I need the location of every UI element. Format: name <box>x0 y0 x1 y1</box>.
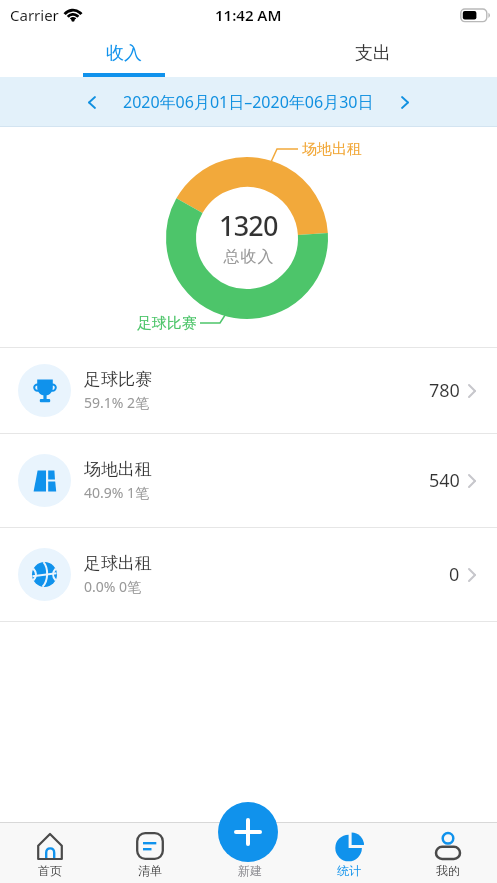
staticText: 0 <box>449 562 460 587</box>
button[interactable]: 我的 <box>398 823 497 883</box>
staticText: 场地出租 <box>84 459 152 480</box>
staticText: 场地出租 <box>302 140 362 159</box>
button[interactable]: 统计 <box>299 823 398 883</box>
staticText: 40.9% 1笔 <box>84 483 150 502</box>
button[interactable] <box>390 87 420 117</box>
staticText: 总收入 <box>223 247 274 267</box>
button[interactable]: 收入 <box>0 30 248 77</box>
button[interactable] <box>218 802 278 862</box>
staticText: 清单 <box>138 863 162 878</box>
staticText: 足球比赛 <box>137 314 197 333</box>
staticText: 我的 <box>436 863 460 878</box>
button[interactable]: 新建 <box>200 823 299 883</box>
button[interactable]: 支出 <box>248 30 497 77</box>
staticText: 11:42 AM <box>215 5 282 25</box>
staticText: 足球出租 <box>84 553 152 574</box>
staticText: 540 <box>429 468 460 493</box>
staticText: 59.1% 2笔 <box>84 393 150 412</box>
staticText: 0.0% 0笔 <box>84 577 142 596</box>
button[interactable]: 首页 <box>0 823 100 883</box>
staticText: 780 <box>429 378 460 403</box>
button[interactable]: 足球出租 <box>0 528 497 621</box>
staticText: 1320 <box>219 207 278 244</box>
staticText: Carrier <box>10 5 59 25</box>
staticText: 支出 <box>355 42 391 65</box>
staticText: 新建 <box>238 863 262 878</box>
staticText: 足球比赛 <box>84 369 152 390</box>
staticText: 首页 <box>38 863 62 878</box>
button[interactable]: 场地出租 <box>0 434 497 527</box>
button[interactable]: 足球比赛 <box>0 348 497 433</box>
staticText: 2020年06月01日–2020年06月30日 <box>123 91 374 113</box>
button[interactable]: 清单 <box>100 823 200 883</box>
button[interactable] <box>77 87 107 117</box>
staticText: 收入 <box>106 42 142 65</box>
staticText: 统计 <box>337 863 361 878</box>
